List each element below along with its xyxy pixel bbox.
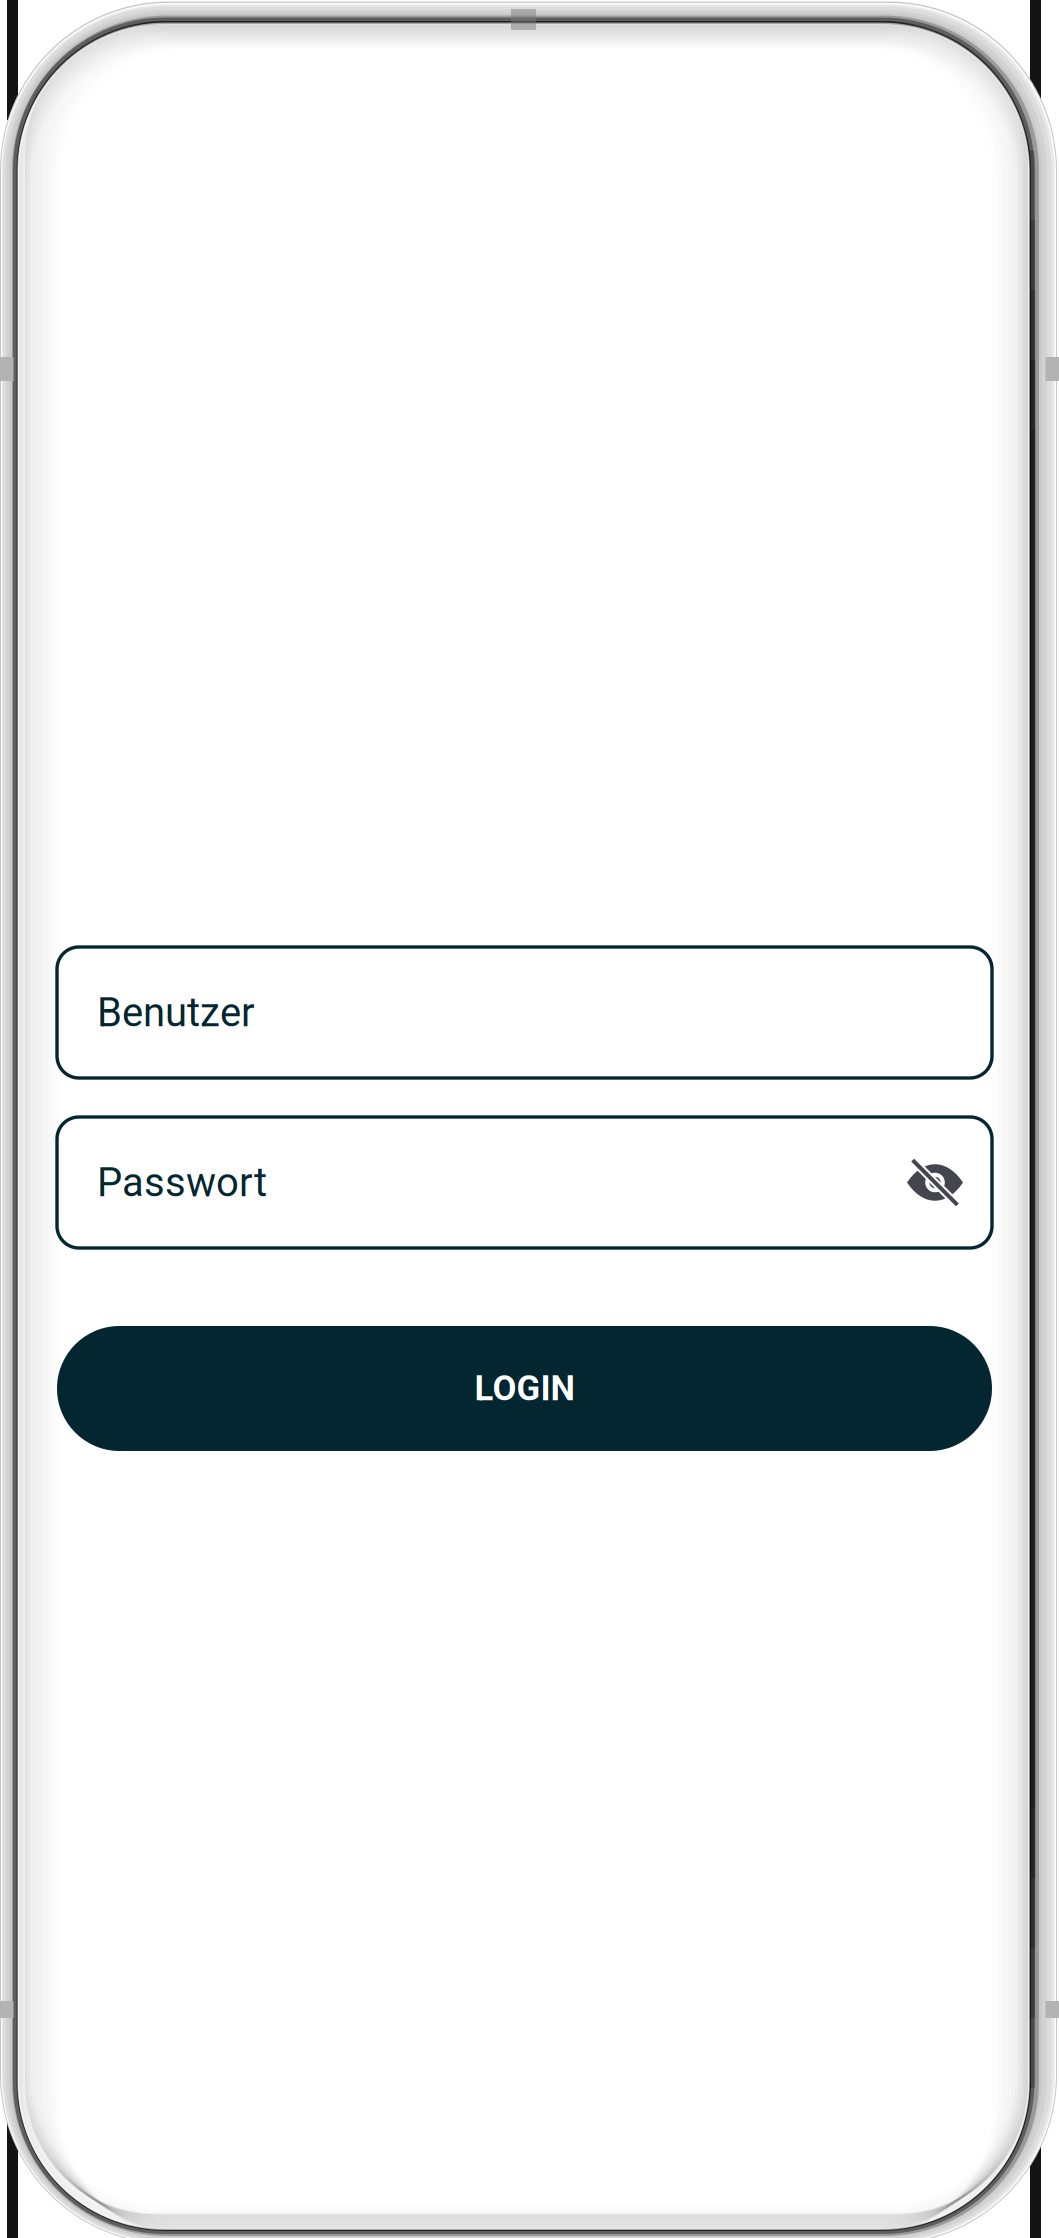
staticText: Passwort [97,1159,267,1206]
staticText: LOGIN [474,1368,574,1409]
button[interactable]: LOGIN [57,1326,992,1451]
staticText: Benutzer [97,989,255,1036]
button[interactable]: Passwort [57,1117,992,1248]
button[interactable]: Benutzer [57,947,992,1078]
